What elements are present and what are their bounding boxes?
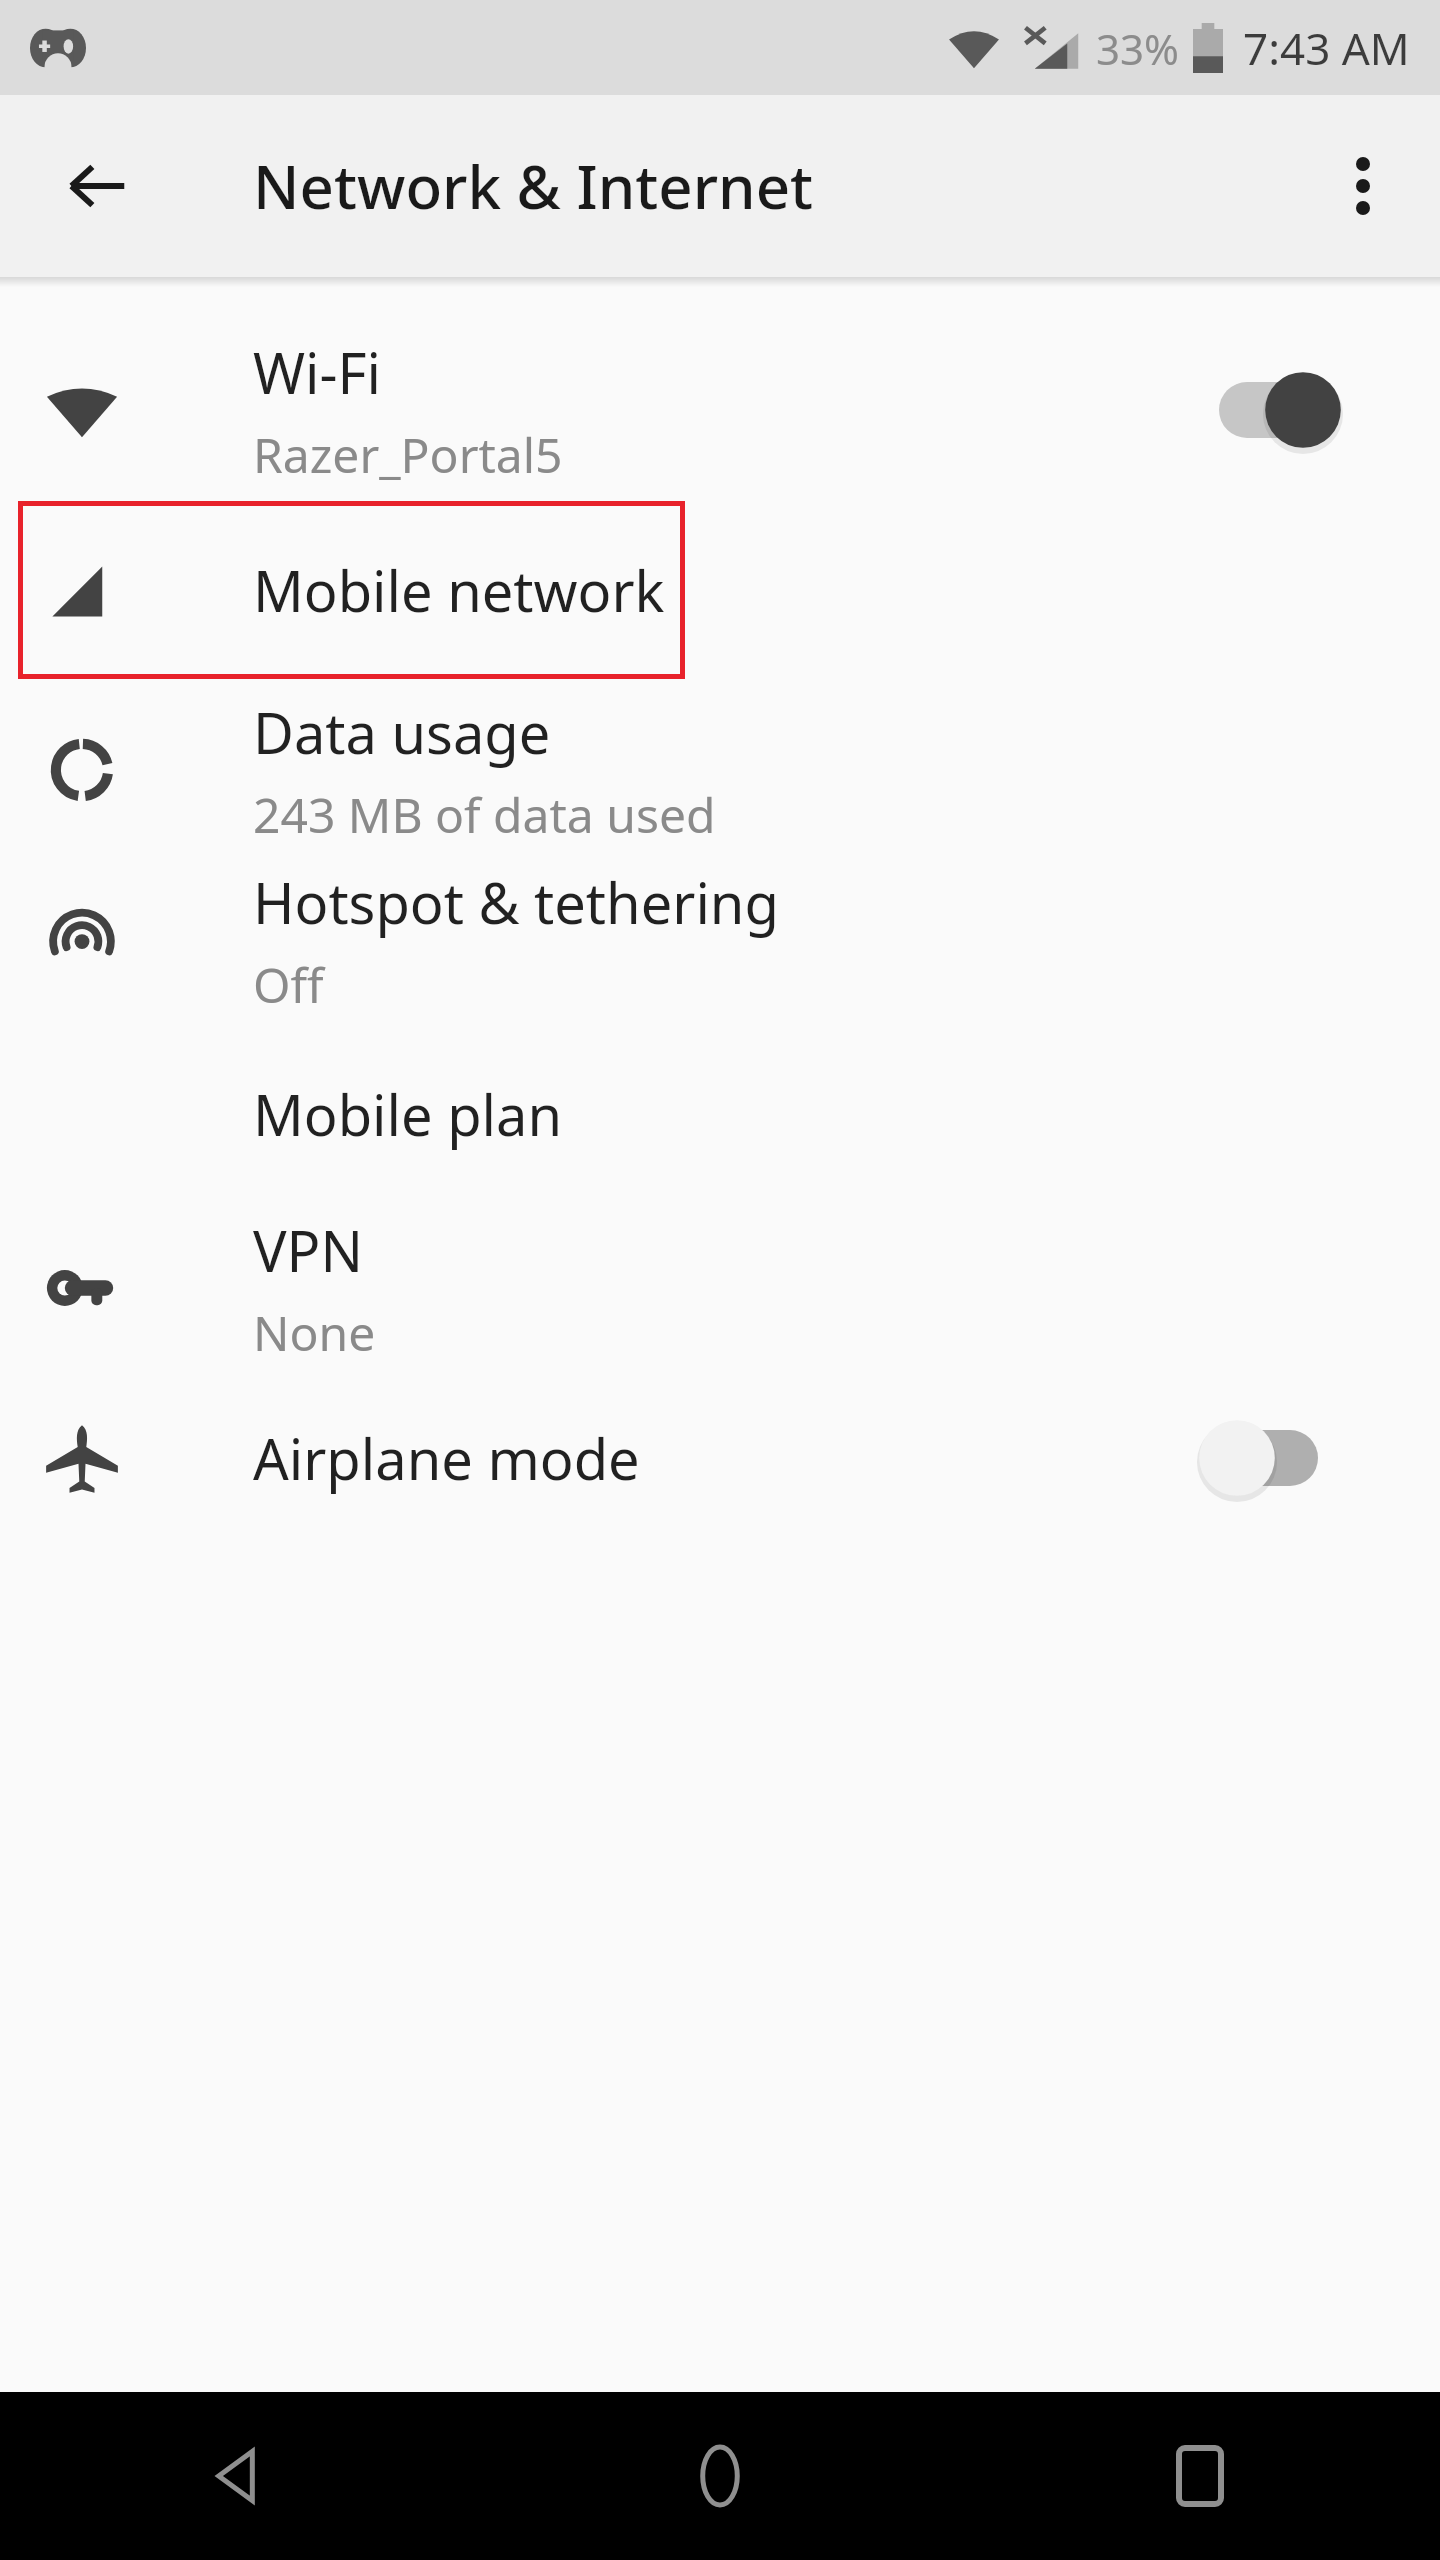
button[interactable]: VPN bbox=[0, 1203, 1440, 1373]
button[interactable]: Recent apps bbox=[960, 2392, 1440, 2560]
staticText: Data usage bbox=[253, 694, 551, 770]
button[interactable]: Airplane mode bbox=[0, 1373, 1440, 1543]
staticText: Network & Internet bbox=[253, 145, 814, 227]
staticText: Mobile network bbox=[253, 552, 665, 628]
button[interactable]: Airplane mode off bbox=[1195, 1413, 1345, 1503]
button[interactable]: Home bbox=[480, 2392, 960, 2560]
staticText: Wi-Fi bbox=[253, 334, 382, 410]
button[interactable]: Mobile plan bbox=[0, 1025, 1440, 1203]
button[interactable]: Wi-Fi bbox=[0, 325, 1440, 495]
button[interactable]: Back bbox=[0, 2392, 480, 2560]
staticText: Airplane mode bbox=[253, 1420, 640, 1496]
button[interactable]: Hotspot & tethering bbox=[0, 855, 1440, 1025]
staticText: Hotspot & tethering bbox=[253, 864, 779, 940]
staticText: VPN bbox=[253, 1212, 364, 1288]
staticText: 33% bbox=[1096, 20, 1179, 77]
button[interactable]: Mobile network bbox=[0, 495, 1440, 685]
staticText: None bbox=[253, 1300, 376, 1365]
button[interactable]: Back bbox=[42, 131, 152, 241]
staticText: 243 MB of data used bbox=[253, 782, 716, 847]
button[interactable]: Wi-Fi on bbox=[1195, 365, 1345, 455]
button[interactable]: More options bbox=[1308, 131, 1418, 241]
staticText: Razer_Portal5 bbox=[253, 422, 563, 487]
button[interactable]: Data usage bbox=[0, 685, 1440, 855]
staticText: Mobile plan bbox=[253, 1076, 563, 1152]
staticText: Off bbox=[253, 952, 324, 1017]
staticText: 7:43 AM bbox=[1243, 18, 1410, 78]
